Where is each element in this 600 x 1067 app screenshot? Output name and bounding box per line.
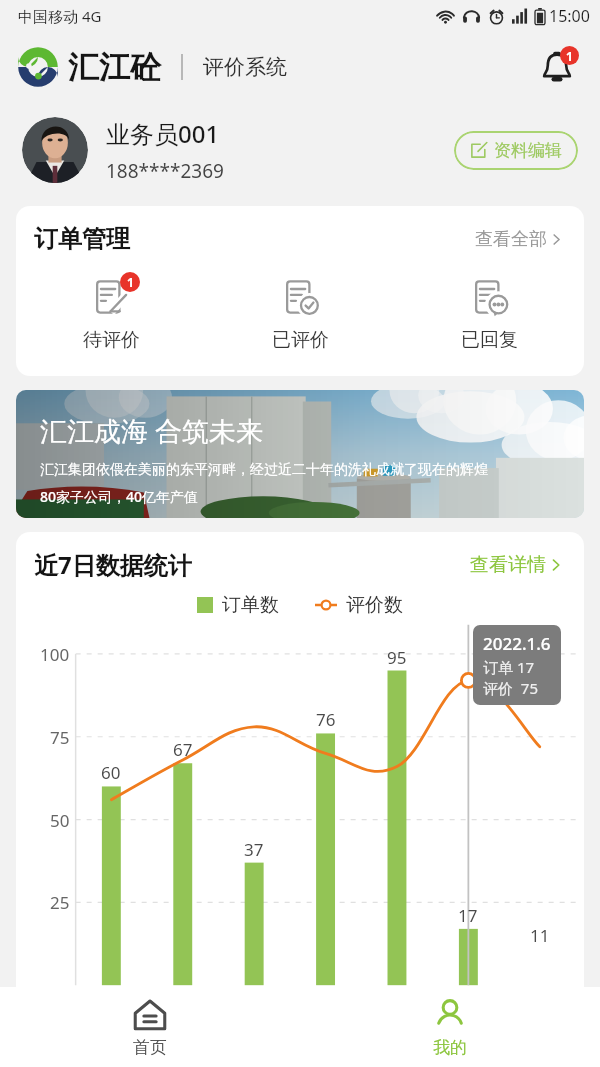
staticText: 25 [50,891,70,914]
staticText: 查看全部 [475,228,547,251]
button[interactable]: 1 [16,274,206,354]
staticText: 60 [101,761,121,784]
staticText: 75 [50,726,70,749]
button[interactable]: 查看全部 [472,225,566,254]
staticText: 汇江砼 [68,48,161,87]
staticText: 首页 [133,1037,167,1058]
staticText: 业务员001 [106,117,220,150]
staticText: 汇江集团依偎在美丽的东平河畔，经过近二十年的洗礼成就了现在的辉煌 [40,461,488,479]
staticText: 80家子公司，40亿年产值 [40,487,199,506]
staticText: 查看详情 [470,553,546,577]
button[interactable]: 已回复 [395,274,584,354]
staticText: 67 [173,738,193,761]
staticText: 37 [244,838,264,861]
staticText: 已回复 [461,328,518,352]
staticText: 已评价 [272,328,329,352]
button[interactable]: 资料编辑 [454,131,578,170]
staticText: 17 [458,904,478,927]
staticText: 评价 75 [483,678,538,698]
button[interactable]: 查看详情 [467,550,566,580]
button[interactable]: 已评价 [206,274,395,354]
staticText: 订单数 [222,593,279,617]
staticText: 50 [50,809,70,832]
staticText: 2022.1.6 [483,632,551,655]
button[interactable]: 我的 [300,987,600,1067]
staticText: 中国移动 4G [18,6,102,26]
staticText: 1 [566,48,573,64]
staticText: 资料编辑 [494,140,562,161]
staticText: 95 [387,646,407,669]
staticText: 我的 [433,1037,467,1058]
staticText: 订单管理 [34,224,130,254]
staticText: 76 [316,708,336,731]
staticText: 汇江成海 合筑未来 [40,412,264,449]
staticText: 11 [530,924,550,947]
staticText: 188****2369 [106,158,224,184]
staticText: 评价系统 [203,54,287,80]
staticText: 100 [40,643,70,666]
staticText: 1 [127,274,134,290]
button[interactable]: 汇江成海 合筑未来 [16,390,584,518]
staticText: 订单 17 [483,657,535,677]
button[interactable]: 首页 [0,987,300,1067]
staticText: 评价数 [346,593,403,617]
staticText: 15:00 [549,5,590,27]
staticText: 待评价 [83,328,140,352]
button[interactable]: Notifications [534,44,580,90]
staticText: 近7日数据统计 [34,548,192,581]
